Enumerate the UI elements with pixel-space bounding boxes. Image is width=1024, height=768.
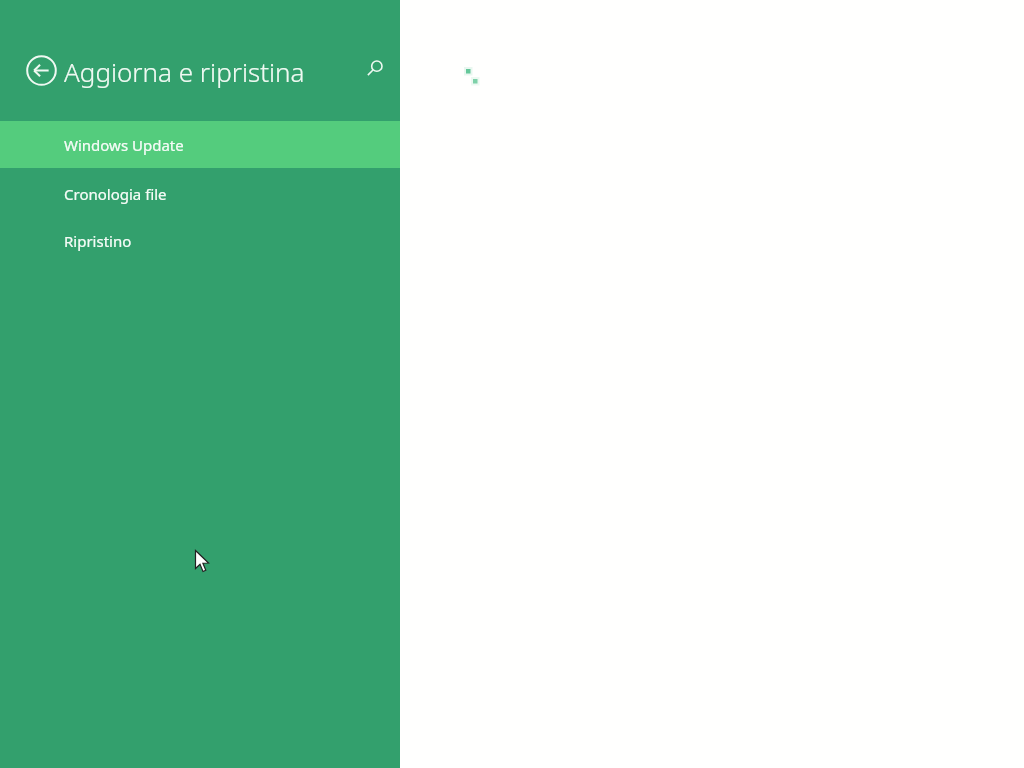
staticText: Aggiorna e ripristina bbox=[64, 54, 305, 89]
button[interactable]: Windows Update bbox=[0, 121, 400, 168]
button[interactable]: Back bbox=[24, 53, 59, 88]
staticText: Windows Update bbox=[64, 135, 184, 155]
button[interactable]: Search bbox=[356, 53, 390, 87]
button[interactable]: Cronologia file bbox=[0, 170, 400, 217]
button[interactable]: Ripristino bbox=[0, 217, 400, 264]
staticText: Cronologia file bbox=[64, 184, 167, 204]
staticText: Ripristino bbox=[64, 231, 132, 251]
